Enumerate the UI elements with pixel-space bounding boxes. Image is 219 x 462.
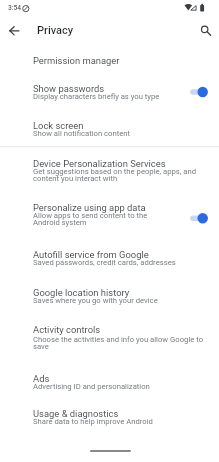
staticText: content you interact with — [33, 174, 118, 183]
staticText: Usage & diagnostics — [33, 408, 119, 419]
button[interactable] — [196, 19, 216, 40]
staticText: Saved passwords, credit cards, addresses — [33, 258, 176, 267]
button[interactable] — [0, 113, 219, 147]
button[interactable] — [0, 316, 219, 358]
button[interactable] — [0, 367, 219, 398]
button[interactable] — [0, 279, 219, 315]
button[interactable] — [0, 402, 219, 434]
staticText: Saves where you go with your device — [33, 296, 158, 305]
button[interactable] — [0, 196, 219, 236]
button[interactable] — [0, 148, 219, 194]
staticText: Advertising ID and personalization — [33, 382, 150, 391]
staticText: Display characters briefly as you type — [33, 92, 160, 101]
staticText: Privacy — [37, 24, 74, 37]
staticText: Get suggestions based on the people, app… — [33, 167, 196, 176]
staticText: Permission manager — [33, 55, 120, 66]
staticText: Google location history — [33, 287, 130, 298]
staticText: Android system — [33, 218, 87, 227]
staticText: save — [33, 342, 49, 351]
staticText: Lock screen — [33, 120, 84, 131]
staticText: Activity controls — [33, 324, 101, 335]
staticText: Autofill service from Google — [33, 249, 149, 260]
staticText: Device Personalization Services — [33, 158, 166, 169]
staticText: Choose the activities and info you allow… — [33, 335, 204, 344]
staticText: Share data to help improve Android — [33, 417, 153, 426]
button[interactable] — [0, 241, 219, 277]
button[interactable] — [4, 20, 26, 42]
staticText: Allow apps to send content to the — [33, 211, 148, 220]
staticText: Show passwords — [33, 83, 105, 94]
button[interactable] — [0, 47, 219, 74]
staticText: 3:54 — [8, 4, 22, 12]
staticText: Ads — [33, 373, 50, 384]
staticText: Personalize using app data — [33, 202, 146, 213]
staticText: Show all notification content — [33, 129, 131, 138]
button[interactable] — [0, 76, 219, 111]
